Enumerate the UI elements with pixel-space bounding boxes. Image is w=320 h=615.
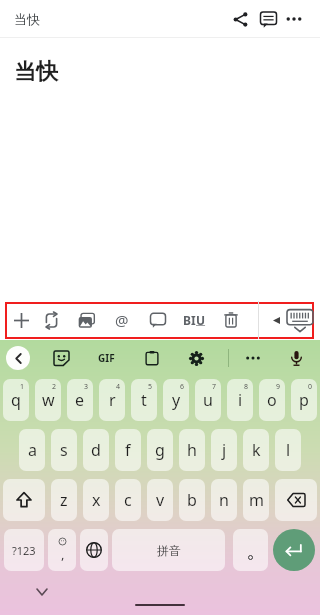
button[interactable]: e <box>67 379 93 421</box>
staticText: d <box>91 439 101 461</box>
button[interactable]: r <box>99 379 125 421</box>
staticText: f <box>125 439 131 461</box>
staticText: 1 <box>20 382 25 392</box>
staticText: p <box>299 389 309 411</box>
staticText: n <box>219 489 229 511</box>
staticText: 3 <box>84 382 89 392</box>
staticText: 6 <box>180 382 185 392</box>
staticText: s <box>60 439 68 461</box>
button[interactable]: ?123 <box>4 529 44 571</box>
button[interactable]: o <box>259 379 285 421</box>
button[interactable] <box>39 340 84 376</box>
button[interactable] <box>254 5 282 33</box>
staticText: x <box>92 489 101 511</box>
staticText: 7 <box>212 382 217 392</box>
button[interactable]: w <box>35 379 61 421</box>
button[interactable]: s <box>51 429 77 471</box>
button[interactable] <box>233 529 268 571</box>
staticText: U <box>196 312 206 328</box>
button[interactable] <box>129 340 174 376</box>
button[interactable] <box>273 529 315 571</box>
button[interactable]: n <box>211 479 237 521</box>
staticText: e <box>75 389 85 411</box>
staticText: g <box>155 439 165 461</box>
button[interactable]: l <box>275 429 301 471</box>
staticText: t <box>141 389 147 411</box>
button[interactable]: m <box>243 479 269 521</box>
button[interactable]: @ <box>104 300 140 340</box>
staticText: c <box>124 489 132 511</box>
staticText: i <box>238 389 243 411</box>
staticText: 9 <box>276 382 281 392</box>
staticText: b <box>187 489 197 511</box>
button[interactable]: d <box>83 429 109 471</box>
staticText: 8 <box>244 382 249 392</box>
button[interactable]: t <box>131 379 157 421</box>
button[interactable]: z <box>51 479 77 521</box>
button[interactable]: y <box>163 379 189 421</box>
staticText: , <box>61 545 65 563</box>
staticText: z <box>60 489 68 511</box>
button[interactable] <box>284 304 316 336</box>
staticText: k <box>252 439 261 461</box>
button[interactable] <box>8 300 34 340</box>
button[interactable] <box>34 300 69 340</box>
button[interactable] <box>212 300 250 340</box>
button[interactable] <box>69 300 104 340</box>
staticText: B <box>183 312 191 328</box>
staticText: m <box>249 489 264 511</box>
staticText: 当快 <box>14 11 40 27</box>
button[interactable] <box>140 300 176 340</box>
staticText: 2 <box>52 382 57 392</box>
button[interactable]: u <box>195 379 221 421</box>
staticText: GIF <box>98 351 115 365</box>
staticText: r <box>109 389 116 411</box>
button[interactable] <box>276 340 316 376</box>
staticText: 4 <box>116 382 121 392</box>
button[interactable] <box>174 340 219 376</box>
staticText: I <box>191 312 196 328</box>
button[interactable]: i <box>227 379 253 421</box>
staticText: v <box>156 489 165 511</box>
button[interactable]: b <box>179 479 205 521</box>
staticText: h <box>187 439 197 461</box>
button[interactable]: v <box>147 479 173 521</box>
button[interactable]: a <box>19 429 45 471</box>
staticText: u <box>203 389 213 411</box>
button[interactable]: B <box>176 300 212 340</box>
button[interactable] <box>282 7 306 31</box>
button[interactable]: , <box>48 529 76 571</box>
button[interactable]: 拼音 <box>112 529 225 571</box>
button[interactable]: k <box>243 429 269 471</box>
button[interactable] <box>226 5 254 33</box>
button[interactable]: g <box>147 429 173 471</box>
button[interactable]: c <box>115 479 141 521</box>
staticText: a <box>28 439 37 461</box>
staticText: 当快 <box>14 58 58 86</box>
button[interactable] <box>6 346 30 370</box>
staticText: l <box>286 439 291 461</box>
staticText: ?123 <box>12 543 36 558</box>
button[interactable]: x <box>83 479 109 521</box>
button[interactable] <box>275 479 317 521</box>
button[interactable] <box>80 529 108 571</box>
button[interactable] <box>3 479 45 521</box>
staticText: w <box>42 389 55 411</box>
staticText: y <box>172 389 181 411</box>
staticText: j <box>222 439 227 461</box>
staticText: q <box>11 389 21 411</box>
button[interactable]: GIF <box>84 340 129 376</box>
staticText: @ <box>115 310 129 330</box>
button[interactable]: h <box>179 429 205 471</box>
button[interactable]: q <box>3 379 29 421</box>
staticText: 0 <box>308 382 313 392</box>
button[interactable] <box>233 340 273 376</box>
button[interactable]: f <box>115 429 141 471</box>
button[interactable]: j <box>211 429 237 471</box>
staticText: o <box>267 389 277 411</box>
button[interactable]: p <box>291 379 317 421</box>
staticText: 拼音 <box>157 543 181 558</box>
staticText: 5 <box>148 382 153 392</box>
